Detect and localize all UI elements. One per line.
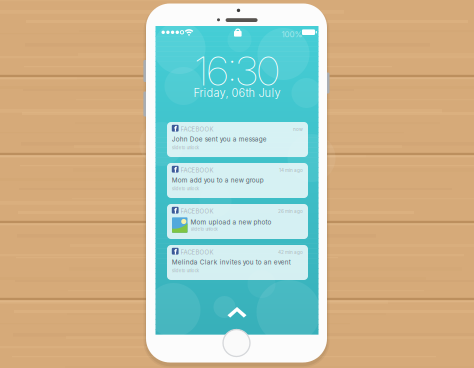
staticText: slide to unlock <box>172 268 199 273</box>
button[interactable]: FACEBOOK <box>167 204 308 239</box>
staticText: slide to unlock <box>172 186 199 191</box>
staticText: 100% <box>281 29 302 39</box>
staticText: now <box>293 126 303 132</box>
staticText: FACEBOOK <box>180 167 213 174</box>
staticText: Melinda Clark invites you to an event <box>172 258 291 266</box>
staticText: 42 min ago <box>278 249 303 255</box>
button[interactable]: FACEBOOK <box>167 122 308 157</box>
staticText: FACEBOOK <box>180 126 213 133</box>
staticText: 14 min ago <box>279 167 303 173</box>
staticText: John Doe sent you a message <box>172 135 267 143</box>
staticText: FACEBOOK <box>180 249 213 256</box>
staticText: slide to unlock <box>190 227 217 232</box>
staticText: 16:30 <box>195 47 279 95</box>
staticText: Friday, 06th July <box>193 86 280 100</box>
staticText: FACEBOOK <box>180 208 213 215</box>
staticText: 26 min ago <box>278 208 303 214</box>
button[interactable]: FACEBOOK <box>167 245 308 280</box>
staticText: slide to unlock <box>172 145 199 150</box>
staticText: Mom upload a new photo <box>190 218 271 226</box>
staticText: Mom add you to a new group <box>172 176 264 184</box>
button[interactable]: FACEBOOK <box>167 163 308 198</box>
